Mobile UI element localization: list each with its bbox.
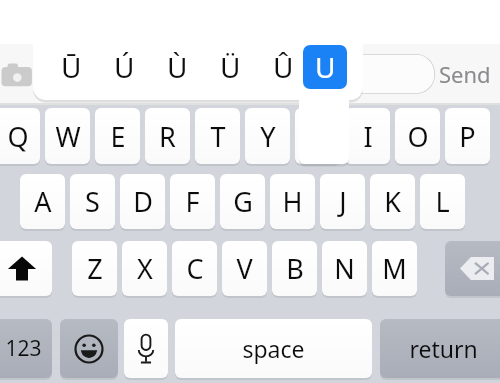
button[interactable]: 123	[0, 319, 52, 378]
staticText: space	[242, 333, 305, 364]
button[interactable]: N	[322, 241, 367, 296]
staticText: Send	[439, 59, 491, 89]
button[interactable]: V	[222, 241, 267, 296]
staticText: Ū	[61, 48, 82, 86]
staticText: K	[384, 183, 401, 220]
staticText: return	[409, 333, 478, 364]
staticText: I	[363, 118, 373, 155]
button[interactable]: S	[70, 174, 115, 229]
staticText: X	[137, 250, 153, 287]
button[interactable]: W	[45, 108, 90, 164]
button[interactable]: M	[372, 241, 417, 296]
staticText: E	[110, 118, 126, 155]
button[interactable]: space	[175, 319, 372, 378]
button[interactable]: Send	[439, 55, 500, 93]
staticText: Y	[260, 118, 276, 155]
button[interactable]: Y	[245, 108, 290, 164]
staticText: J	[339, 183, 347, 220]
button[interactable]: F	[170, 174, 215, 229]
button[interactable]: Ù	[151, 45, 204, 89]
staticText: F	[185, 183, 200, 220]
staticText: V	[236, 250, 253, 287]
staticText: O	[407, 118, 429, 155]
staticText: Ú	[114, 48, 135, 86]
button[interactable]: P	[445, 108, 490, 164]
button[interactable]: D	[120, 174, 165, 229]
staticText: R	[159, 118, 176, 155]
staticText: Ù	[167, 48, 188, 86]
button[interactable]	[46, 54, 435, 94]
button[interactable]: O	[395, 108, 440, 164]
staticText: P	[459, 118, 476, 155]
button[interactable]: G	[220, 174, 265, 229]
button[interactable]: Q	[0, 108, 40, 164]
button[interactable]: E	[95, 108, 140, 164]
button[interactable]: T	[195, 108, 240, 164]
button[interactable]: U	[303, 45, 347, 89]
button[interactable]: I	[345, 108, 390, 164]
staticText: W	[55, 118, 81, 155]
button[interactable]: C	[172, 241, 217, 296]
staticText: H	[282, 183, 303, 220]
staticText: Q	[7, 118, 29, 155]
staticText: S	[85, 183, 100, 220]
button[interactable]: Camera	[0, 58, 38, 90]
staticText: N	[334, 250, 355, 287]
staticText: Û	[273, 48, 294, 86]
button[interactable]: L	[420, 174, 465, 229]
button[interactable]: B	[272, 241, 317, 296]
staticText: L	[435, 183, 450, 220]
button[interactable]: A	[20, 174, 65, 229]
button[interactable]: Û	[257, 45, 310, 89]
staticText: T	[210, 118, 226, 155]
button[interactable]: Ü	[204, 45, 257, 89]
staticText: B	[286, 250, 304, 287]
button[interactable]: Ú	[98, 45, 151, 89]
button[interactable]: X	[122, 241, 167, 296]
button[interactable]: Shift	[0, 241, 52, 296]
button[interactable]: Emoji	[60, 319, 118, 378]
button[interactable]: Dictate	[124, 319, 168, 378]
button[interactable]: Ū	[45, 45, 98, 89]
staticText: Ü	[220, 48, 241, 86]
button[interactable]: U	[295, 108, 340, 164]
staticText: U	[315, 48, 336, 86]
staticText: M	[382, 250, 407, 287]
button[interactable]: R	[145, 108, 190, 164]
staticText: 123	[5, 334, 42, 363]
staticText: Z	[87, 250, 103, 287]
staticText: D	[133, 183, 153, 220]
staticText: A	[34, 183, 52, 220]
button[interactable]: H	[270, 174, 315, 229]
staticText: C	[186, 250, 204, 287]
staticText: G	[233, 183, 253, 220]
button[interactable]: return	[380, 319, 500, 378]
button[interactable]: Backspace	[445, 241, 500, 296]
button[interactable]: K	[370, 174, 415, 229]
button[interactable]: Z	[72, 241, 117, 296]
button[interactable]: J	[320, 174, 365, 229]
